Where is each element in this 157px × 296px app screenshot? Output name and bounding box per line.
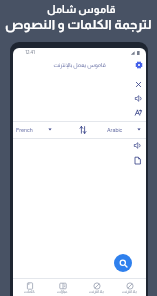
button[interactable]: كلمات bbox=[13, 279, 46, 296]
staticText: كلمات bbox=[24, 289, 35, 293]
button[interactable]: Arabic bbox=[101, 121, 129, 138]
button[interactable]: بلا انترنت bbox=[80, 279, 113, 296]
button[interactable] bbox=[133, 93, 144, 104]
button[interactable] bbox=[132, 140, 143, 151]
staticText: لترجمة الكلمات و النصوص bbox=[5, 17, 152, 32]
button[interactable] bbox=[78, 125, 88, 135]
staticText: Arabic bbox=[107, 127, 123, 133]
button[interactable] bbox=[133, 79, 144, 90]
button[interactable]: عبارات bbox=[46, 279, 79, 296]
staticText: بلا انترنت bbox=[89, 289, 104, 293]
button[interactable] bbox=[134, 60, 144, 70]
staticText: قاموس شامل bbox=[47, 3, 116, 15]
staticText: French bbox=[16, 127, 33, 133]
staticText: 12:41 bbox=[25, 49, 35, 55]
staticText: بلا انترنت bbox=[122, 289, 137, 293]
button[interactable] bbox=[133, 107, 144, 118]
button[interactable]: French bbox=[16, 121, 48, 138]
staticText: قاموس يعمل بالإنترنت bbox=[53, 62, 106, 68]
button[interactable]: بلا انترنت bbox=[113, 279, 146, 296]
button[interactable] bbox=[132, 155, 143, 166]
button[interactable] bbox=[114, 254, 132, 272]
staticText: عبارات bbox=[57, 289, 68, 293]
